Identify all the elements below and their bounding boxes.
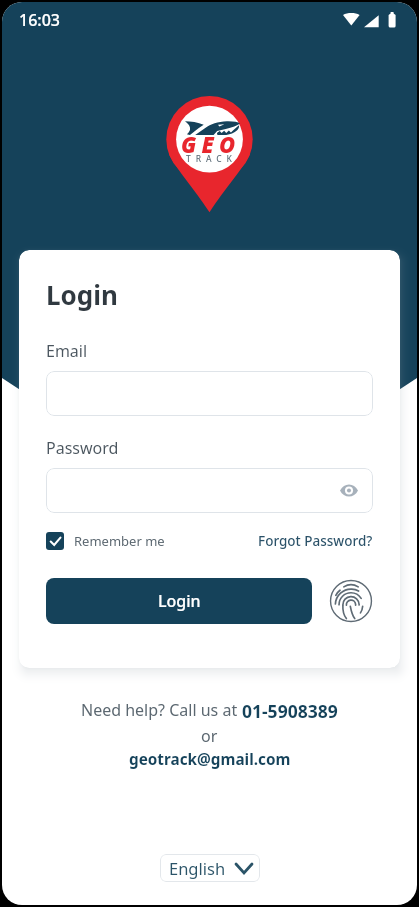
staticText: Password xyxy=(46,437,119,459)
staticText: Remember me xyxy=(74,532,165,550)
button[interactable]: Show password xyxy=(336,478,362,504)
staticText: TRACK xyxy=(186,153,237,165)
staticText: Need help? Call us at xyxy=(81,699,242,721)
button[interactable]: Remember me xyxy=(46,532,165,550)
staticText: 01-5908389 xyxy=(242,699,338,723)
button[interactable] xyxy=(46,371,373,416)
staticText: GEO xyxy=(181,129,241,159)
button[interactable]: Login xyxy=(46,578,312,624)
staticText: Email xyxy=(46,340,88,362)
staticText: Forgot Password? xyxy=(258,532,373,550)
button[interactable]: English xyxy=(160,854,260,882)
staticText: or xyxy=(201,725,218,747)
staticText: 16:03 xyxy=(19,9,60,31)
button[interactable]: Fingerprint login xyxy=(329,579,373,623)
button[interactable]: Show password xyxy=(46,468,373,513)
staticText: geotrack@gmail.com xyxy=(129,749,291,770)
staticText: English xyxy=(169,857,226,879)
staticText: Login xyxy=(158,590,201,612)
button[interactable]: Forgot Password? xyxy=(258,532,373,550)
staticText: Login xyxy=(46,277,118,312)
